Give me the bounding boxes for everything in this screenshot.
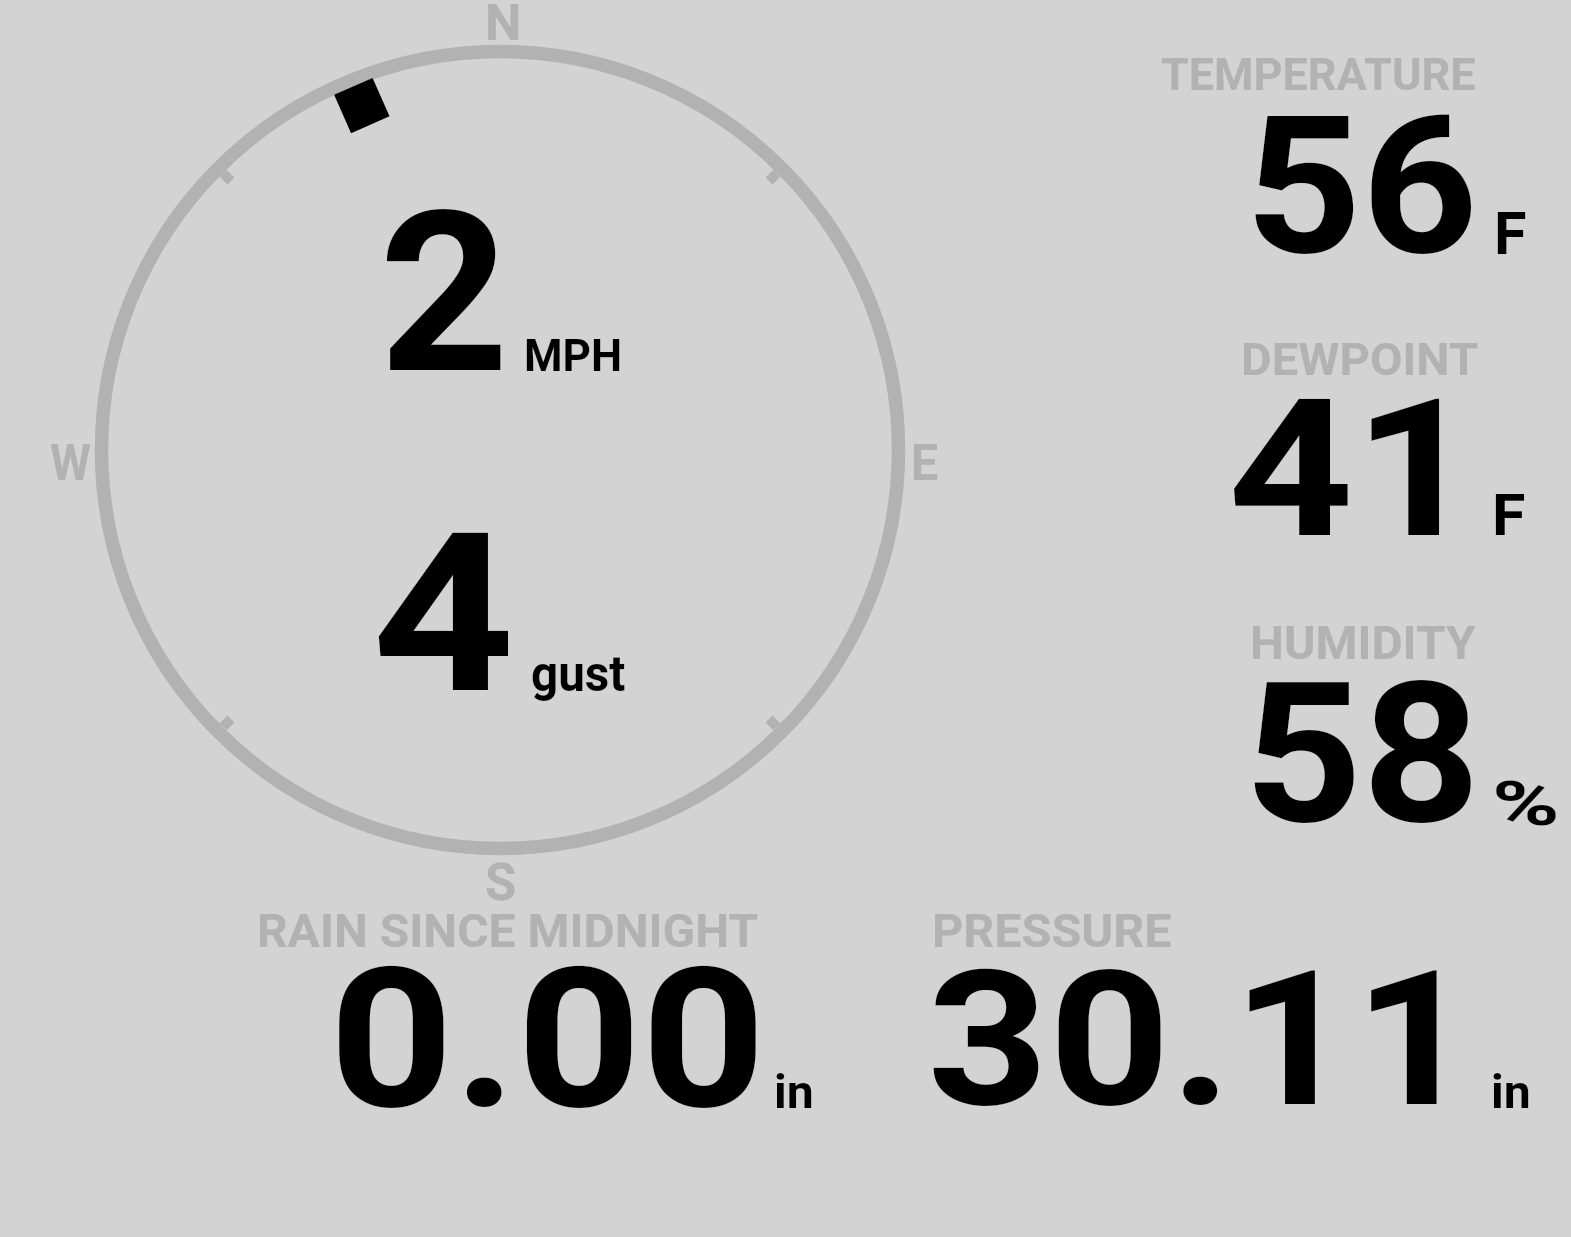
button[interactable]: Pressure 30.11 in (925, 908, 1535, 1113)
staticText: in (1491, 1065, 1532, 1119)
button[interactable]: Rain since midnight 0.00 in (255, 908, 815, 1113)
staticText: W (50, 433, 92, 492)
button[interactable]: Wind direction and speed (95, 47, 905, 857)
staticText: S (485, 852, 516, 913)
staticText: in (774, 1065, 815, 1119)
staticText: F (1492, 482, 1526, 549)
staticText: TEMPERATURE (1161, 48, 1476, 101)
staticText: E (911, 433, 939, 492)
staticText: RAIN SINCE MIDNIGHT (257, 905, 759, 958)
staticText: MPH (524, 329, 623, 382)
staticText: N (485, 0, 522, 52)
staticText: HUMIDITY (1250, 617, 1476, 670)
staticText: F (1494, 200, 1527, 269)
staticText: 41 (1228, 358, 1479, 582)
staticText: 0.00 (329, 925, 767, 1154)
staticText: DEWPOINT (1241, 333, 1478, 386)
staticText: PRESSURE (932, 905, 1172, 959)
staticText: % (1492, 768, 1560, 840)
staticText: 30.11 (927, 929, 1476, 1150)
staticText: 4 (372, 485, 515, 744)
button[interactable]: Dewpoint 41 F (1160, 335, 1560, 540)
staticText: 56 (1245, 74, 1479, 299)
button[interactable]: Humidity 58 percent (1160, 620, 1560, 830)
button[interactable]: Temperature 56 F (1160, 50, 1560, 260)
staticText: 2 (379, 163, 510, 425)
staticText: 58 (1244, 641, 1481, 869)
staticText: gust (531, 645, 626, 703)
